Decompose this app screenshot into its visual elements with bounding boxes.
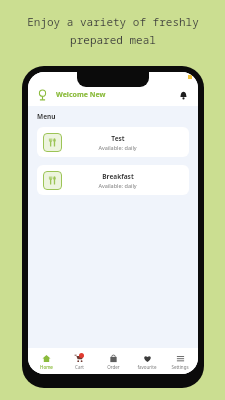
- staticText: Menu: [37, 112, 56, 121]
- button[interactable]: Home: [30, 353, 62, 370]
- button[interactable]: Test: [37, 127, 189, 157]
- staticText: Settings: [171, 364, 189, 370]
- staticText: Breakfast: [102, 172, 134, 181]
- button[interactable]: Cart: [63, 353, 95, 370]
- button[interactable]: Logo: [36, 89, 49, 102]
- staticText: Available: daily: [98, 182, 137, 189]
- staticText: Test: [111, 134, 125, 143]
- staticText: Order: [107, 364, 120, 370]
- button[interactable]: Breakfast: [37, 165, 189, 195]
- staticText: favourite: [137, 364, 157, 370]
- staticText: prepared meal: [70, 32, 156, 47]
- staticText: Cart: [75, 364, 84, 370]
- button[interactable]: Order: [97, 353, 129, 370]
- staticText: Enjoy a variety of freshly: [27, 14, 199, 29]
- staticText: Home: [40, 364, 53, 370]
- button[interactable]: Notifications: [176, 88, 190, 102]
- staticText: Available: daily: [98, 144, 137, 151]
- button[interactable]: Settings: [164, 353, 196, 370]
- button[interactable]: favourite: [131, 353, 163, 370]
- staticText: Welcome New: [56, 90, 106, 100]
